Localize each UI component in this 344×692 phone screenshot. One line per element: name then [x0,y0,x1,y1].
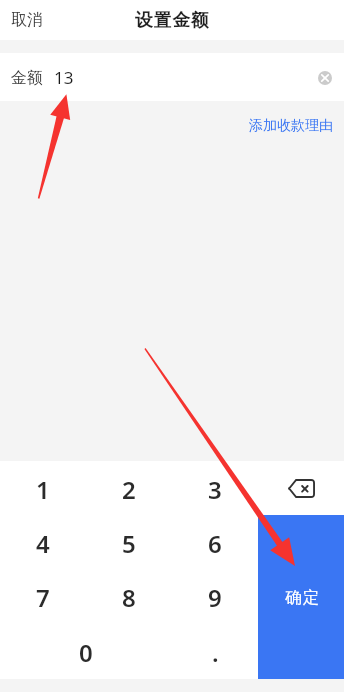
staticText: 取消 [11,10,43,30]
staticText: . [212,636,219,669]
staticText: 添加收款理由 [249,117,333,135]
button[interactable]: 2 [86,461,172,515]
button[interactable]: 确定 [258,515,344,679]
staticText: 5 [122,527,136,560]
button[interactable]: 7 [0,569,86,624]
staticText: 8 [122,581,136,614]
button[interactable]: 4 [0,515,86,569]
button[interactable]: 9 [172,569,258,624]
button[interactable]: . [172,624,258,679]
button[interactable]: 5 [86,515,172,569]
button[interactable]: 添加收款理由 [238,112,344,140]
staticText: 2 [122,473,136,506]
staticText: 1 [36,473,50,506]
staticText: 3 [208,473,222,506]
button[interactable]: 3 [172,461,258,515]
staticText: 9 [208,581,222,614]
staticText: 确定 [285,587,322,608]
button[interactable]: 取消 [0,3,54,37]
button[interactable]: 8 [86,569,172,624]
staticText: 13 [54,66,74,89]
staticText: 设置金额 [135,9,210,31]
button[interactable]: 1 [0,461,86,515]
staticText: 金额 [11,68,43,88]
button[interactable]: 0 [0,624,172,679]
staticText: 6 [208,527,222,560]
button[interactable]: Backspace [258,461,344,515]
button[interactable]: 6 [172,515,258,569]
button[interactable]: Clear [313,65,337,89]
staticText: 4 [36,527,50,560]
staticText: 0 [79,636,93,669]
staticText: 7 [36,581,50,614]
